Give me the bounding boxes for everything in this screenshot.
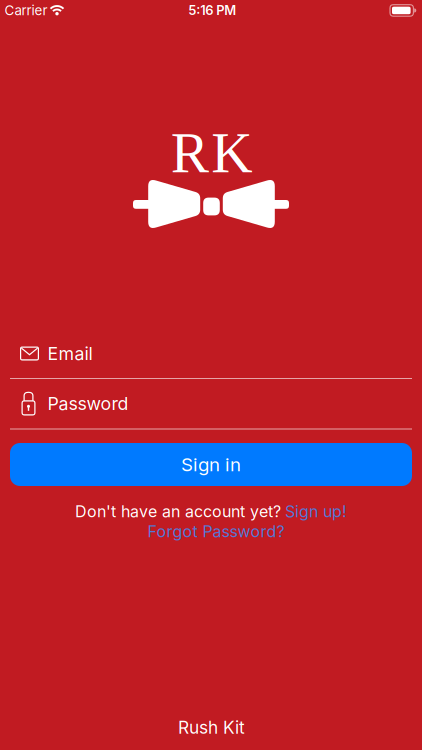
button[interactable]: Password: [0, 378, 422, 428]
staticText: Sign in: [181, 453, 241, 476]
staticText: Rush Kit: [178, 717, 245, 738]
staticText: Carrier: [4, 2, 47, 18]
button[interactable]: Forgot Password?: [147, 522, 284, 541]
staticText: Email: [47, 343, 92, 364]
staticText: Sign up!: [285, 502, 347, 521]
staticText: Don't have an account yet?: [75, 502, 281, 521]
button[interactable]: Sign in: [10, 443, 412, 486]
staticText: Forgot Password?: [147, 522, 284, 541]
staticText: RK: [171, 121, 252, 185]
button[interactable]: Email: [0, 328, 422, 378]
staticText: Password: [47, 393, 128, 414]
button[interactable]: Sign up!: [285, 502, 347, 521]
staticText: 5:16 PM: [188, 2, 236, 18]
